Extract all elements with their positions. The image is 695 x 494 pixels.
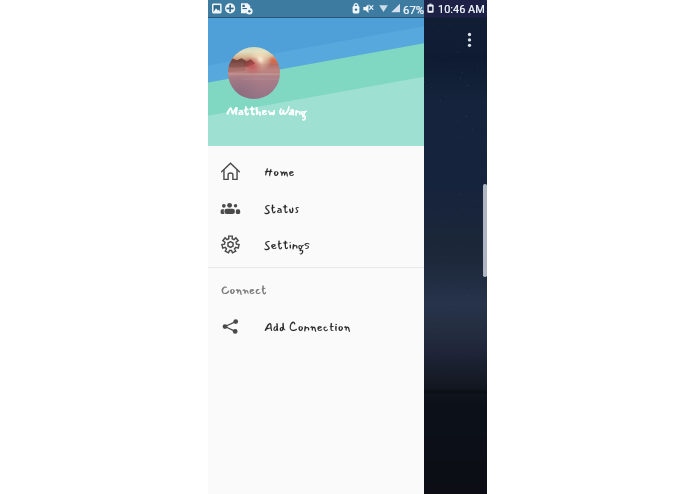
- button[interactable]: Settings: [208, 226, 424, 263]
- button[interactable]: Profile photo: [228, 47, 280, 99]
- staticText: Settings: [264, 235, 311, 255]
- staticText: Connect: [221, 280, 267, 300]
- staticText: Home: [264, 162, 295, 182]
- staticText: Add Connection: [264, 317, 351, 337]
- staticText: Connect: [221, 280, 267, 300]
- staticText: 67%: [403, 3, 425, 16]
- staticText: Matthew Wang: [226, 101, 307, 120]
- staticText: Status: [264, 199, 300, 219]
- staticText: Home: [264, 162, 295, 182]
- button[interactable]: Home: [208, 153, 424, 190]
- button[interactable]: Add Connection: [208, 308, 424, 345]
- staticText: Add Connection: [264, 317, 351, 337]
- staticText: Settings: [264, 235, 311, 255]
- button[interactable]: More options: [462, 29, 477, 51]
- staticText: Status: [264, 199, 300, 219]
- button[interactable]: Status: [208, 190, 424, 227]
- staticText: 10:46 AM: [438, 3, 485, 16]
- staticText: Matthew Wang: [226, 101, 307, 120]
